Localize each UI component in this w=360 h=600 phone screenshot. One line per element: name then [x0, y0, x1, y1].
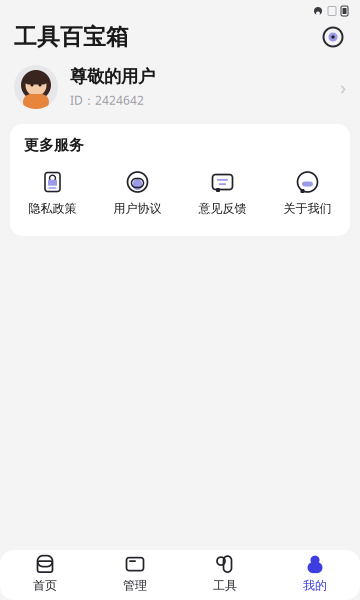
button[interactable]: 意见反馈 [180, 166, 265, 220]
button[interactable]: 工具 [180, 547, 270, 600]
staticText: › [340, 74, 346, 100]
staticText: 关于我们 [283, 201, 331, 216]
staticText: 工具百宝箱 [14, 23, 129, 51]
button[interactable]: 隐私政策 [10, 166, 95, 220]
button[interactable]: 尊敬的用户 [0, 60, 360, 114]
staticText: 管理 [123, 578, 147, 593]
staticText: 尊敬的用户 [70, 66, 155, 87]
button[interactable]: 我的 [270, 547, 360, 600]
staticText: 用户协议 [113, 201, 161, 216]
button[interactable]: 首页 [0, 547, 90, 600]
staticText: 意见反馈 [198, 201, 246, 216]
staticText: 更多服务 [24, 136, 84, 154]
button[interactable]: 关于我们 [265, 166, 350, 220]
button[interactable]: 管理 [90, 547, 180, 600]
staticText: 隐私政策 [28, 201, 76, 216]
staticText: 首页 [33, 578, 57, 593]
button[interactable]: Settings [320, 24, 346, 50]
staticText: 我的 [303, 578, 327, 593]
button[interactable]: 用户协议 [95, 166, 180, 220]
staticText: 工具 [213, 578, 237, 593]
staticText: ID：2424642 [70, 92, 144, 108]
